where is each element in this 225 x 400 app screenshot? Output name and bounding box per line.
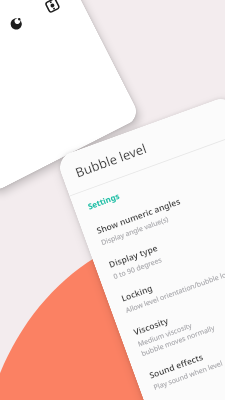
- staticText: Settings: [86, 190, 121, 211]
- button[interactable]: Settings: [39, 0, 66, 19]
- staticText: Medium viscosity bubble moves normally: [137, 314, 217, 359]
- button[interactable]: Display type: [93, 198, 225, 295]
- staticText: Display angle value(s): [100, 214, 170, 248]
- button[interactable]: Sound effects: [133, 309, 225, 400]
- button[interactable]: Locking: [105, 232, 225, 329]
- button[interactable]: Bubble level: [55, 94, 225, 400]
- staticText: Display type: [107, 242, 159, 271]
- button[interactable]: Viscosity: [118, 265, 225, 372]
- staticText: Play sound when level: [152, 358, 224, 393]
- button[interactable]: Theme: [3, 10, 30, 37]
- staticText: Sound effects: [148, 351, 205, 382]
- staticText: Bubble level: [73, 139, 149, 181]
- staticText: Locking: [120, 282, 155, 305]
- button[interactable]: Show numeric angles: [81, 164, 225, 261]
- staticText: Viscosity: [132, 314, 171, 338]
- staticText: Allow level orientation/bubble locking: [124, 264, 225, 316]
- staticText: 0 to 90 degrees: [112, 255, 163, 282]
- staticText: Show numeric angles: [95, 195, 183, 237]
- button[interactable]: Undo: [0, 0, 141, 194]
